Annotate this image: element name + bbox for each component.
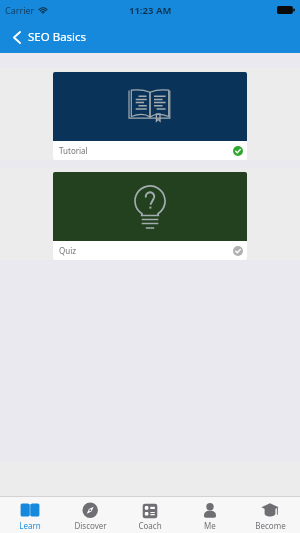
staticText: Tutorial [59, 145, 88, 156]
button[interactable]: Me [180, 497, 240, 533]
other: Back [13, 31, 21, 44]
staticText: Carrier [5, 4, 35, 16]
staticText: Coach [138, 520, 162, 531]
button[interactable]: Tutorial [0, 68, 300, 160]
button[interactable]: Learn [0, 497, 60, 533]
staticText: Learn [19, 520, 41, 531]
staticText: Become [255, 520, 286, 531]
button[interactable]: Coach [120, 497, 180, 533]
button[interactable]: Back [10, 25, 90, 49]
staticText: 11:23 AM [129, 4, 172, 17]
button[interactable]: Discover [60, 497, 120, 533]
staticText: SEO Basics [28, 29, 87, 45]
staticText: Me [204, 520, 216, 531]
button[interactable]: Become [240, 497, 300, 533]
staticText: Quiz [59, 245, 77, 256]
button[interactable]: Quiz [0, 168, 300, 260]
staticText: Discover [74, 520, 107, 531]
